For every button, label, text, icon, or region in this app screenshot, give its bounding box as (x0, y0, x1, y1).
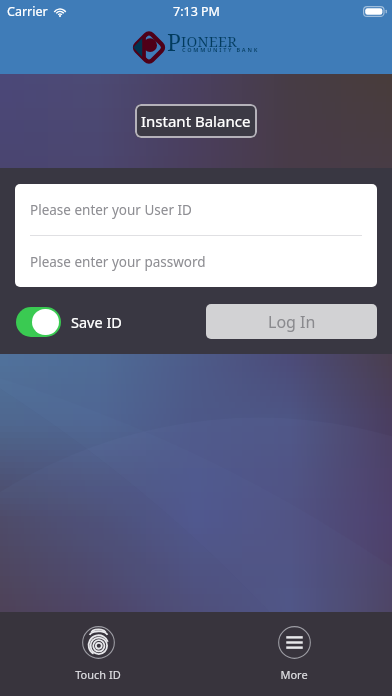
staticText: Touch ID (75, 667, 121, 682)
staticText: Instant Balance (141, 111, 251, 131)
staticText: Carrier (7, 3, 48, 20)
button[interactable]: Save ID (16, 307, 122, 337)
staticText: Log In (268, 311, 316, 333)
staticText: More (280, 667, 308, 682)
staticText: IONEER (181, 31, 237, 51)
staticText: P (167, 26, 181, 57)
staticText: Please enter your User ID (30, 201, 192, 219)
button[interactable]: Please enter your User ID (15, 184, 377, 235)
staticText: Please enter your password (30, 253, 206, 271)
staticText: 7:13 PM (173, 3, 220, 20)
button[interactable]: Touch ID (0, 612, 196, 696)
button[interactable]: Instant Balance (135, 104, 257, 138)
button[interactable]: More (196, 612, 392, 696)
staticText: Save ID (71, 312, 122, 332)
button[interactable]: Please enter your password (15, 236, 377, 287)
button[interactable]: Log In (206, 304, 377, 339)
staticText: COMMUNITY BANK (182, 46, 260, 53)
